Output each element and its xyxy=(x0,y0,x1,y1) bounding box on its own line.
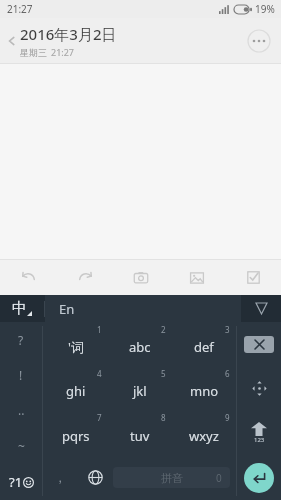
staticText: ， xyxy=(54,470,66,485)
staticText: 3 xyxy=(225,324,230,335)
staticText: 123 xyxy=(254,436,265,444)
button[interactable]: Backspace xyxy=(237,322,281,366)
button[interactable]: 6 xyxy=(172,366,236,410)
staticText: 2 xyxy=(161,324,166,335)
staticText: 0 xyxy=(216,471,222,485)
staticText: .. xyxy=(18,402,25,418)
staticText: 星期三 xyxy=(20,47,47,58)
button[interactable]: 8 xyxy=(108,410,172,455)
staticText: 4 xyxy=(97,368,102,379)
button[interactable]: .. xyxy=(0,392,42,428)
button[interactable]: 中 xyxy=(0,295,44,322)
staticText: abc xyxy=(129,338,151,356)
button[interactable]: More options xyxy=(247,29,271,53)
button[interactable]: Undo xyxy=(0,260,57,295)
staticText: 6 xyxy=(225,368,230,379)
staticText: 拼音 xyxy=(161,471,183,485)
button[interactable]: ~ xyxy=(0,428,42,464)
button[interactable]: ! xyxy=(0,357,42,392)
staticText: 21:27 xyxy=(51,46,75,58)
staticText: 8 xyxy=(161,412,166,423)
staticText: def xyxy=(194,338,214,356)
staticText: 1 xyxy=(97,324,102,335)
staticText: ! xyxy=(19,367,23,383)
button[interactable]: 4 xyxy=(43,366,108,410)
staticText: tuv xyxy=(130,427,150,445)
button[interactable]: ? xyxy=(0,322,42,357)
staticText: 21:27 xyxy=(7,2,33,16)
staticText: pqrs xyxy=(62,427,90,445)
staticText: jkl xyxy=(133,382,147,400)
staticText: 2016年3月2日 xyxy=(20,24,117,44)
button[interactable]: Back xyxy=(6,35,18,47)
button[interactable]: ， xyxy=(43,455,77,500)
button[interactable]: Redo xyxy=(57,260,113,295)
staticText: ~ xyxy=(18,438,25,454)
button[interactable]: Shift, numbers xyxy=(237,410,281,455)
button[interactable]: 7 xyxy=(43,410,108,455)
button[interactable]: Switch language xyxy=(77,455,113,500)
staticText: ? xyxy=(18,332,24,348)
button[interactable]: Checklist xyxy=(225,260,281,295)
staticText: wxyz xyxy=(189,427,219,445)
staticText: En xyxy=(59,300,75,318)
button[interactable]: 拼音 xyxy=(113,467,230,488)
button[interactable]: 1 xyxy=(43,322,108,366)
button[interactable]: Enter xyxy=(237,455,281,500)
staticText: ?1 xyxy=(9,473,23,491)
staticText: 19% xyxy=(255,2,275,16)
button[interactable]: ?1 xyxy=(0,464,42,500)
button[interactable]: Camera xyxy=(113,260,169,295)
staticText: 5 xyxy=(161,368,166,379)
staticText: mno xyxy=(190,382,219,400)
button[interactable]: 2 xyxy=(108,322,172,366)
staticText: 9 xyxy=(225,412,230,423)
staticText: ghi xyxy=(66,382,86,400)
button[interactable]: 3 xyxy=(172,322,236,366)
button[interactable]: En xyxy=(45,295,241,322)
button[interactable]: Insert image xyxy=(169,260,225,295)
button[interactable]: Move cursor xyxy=(237,366,281,410)
staticText: 7 xyxy=(97,412,102,423)
button[interactable]: 9 xyxy=(172,410,236,455)
button[interactable]: 5 xyxy=(108,366,172,410)
staticText: 中 xyxy=(12,299,27,318)
staticText: '词 xyxy=(68,338,84,356)
button[interactable]: Hide keyboard xyxy=(241,295,281,322)
